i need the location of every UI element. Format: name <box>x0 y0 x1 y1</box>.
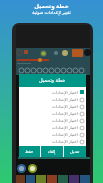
staticText: اختيار الإعدادات <box>52 132 78 137</box>
button[interactable]: اختيار الإعدادات <box>21 110 84 117</box>
staticText: تعديل <box>70 149 80 154</box>
button[interactable]: اختيار الإعدادات <box>21 103 84 110</box>
button[interactable]: اختيار الإعدادات <box>21 117 84 124</box>
button[interactable]: اختيار الإعدادات <box>21 131 84 138</box>
button[interactable]: اختيار الإعدادات <box>21 138 84 145</box>
staticText: خطة وتحميل <box>39 77 66 84</box>
staticText: اختيار الإعدادات <box>52 90 78 95</box>
staticText: اختيار الإعدادات <box>52 139 78 144</box>
staticText: اختيار الإعدادات <box>52 118 78 123</box>
button[interactable]: اختيار الإعدادات <box>21 124 84 131</box>
staticText: اختيار الإعدادات <box>52 97 78 102</box>
staticText: اختيار الإعدادات <box>52 111 78 116</box>
button[interactable]: إلغاء <box>41 146 63 157</box>
staticText: خطة وتحميل <box>34 2 69 9</box>
staticText: حفظ <box>25 149 34 154</box>
staticText: اختيار الإعدادات <box>52 104 78 109</box>
button[interactable]: اختيار الإعدادات <box>21 96 84 103</box>
staticText: تغيير لإعدادات صوتية <box>32 9 71 15</box>
button[interactable]: تعديل <box>64 146 86 157</box>
staticText: اختيار الإعدادات <box>52 125 78 130</box>
button[interactable]: اختيار الإعدادات <box>21 88 84 96</box>
staticText: إلغاء <box>48 149 56 154</box>
button[interactable]: حفظ <box>19 146 40 157</box>
